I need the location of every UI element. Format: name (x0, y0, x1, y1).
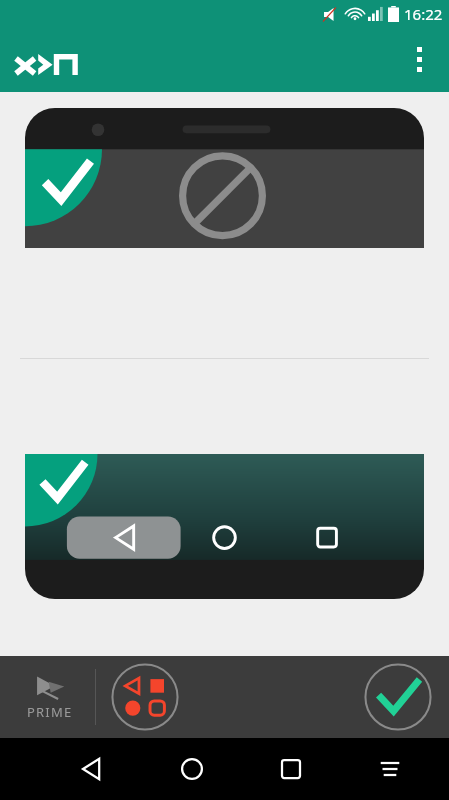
button[interactable]: Apply (361, 660, 435, 734)
staticText: 16:22 (404, 4, 443, 24)
button[interactable]: Recents (241, 738, 340, 800)
button[interactable]: Home (142, 738, 241, 800)
button[interactable]: Shapes (108, 660, 182, 734)
button[interactable]: PRIME (14, 674, 86, 721)
button[interactable]: Back (42, 738, 142, 800)
button[interactable] (25, 454, 424, 599)
button[interactable] (25, 108, 424, 248)
staticText: PRIME (27, 703, 73, 721)
button[interactable]: Menu (340, 738, 439, 800)
button[interactable]: More options (397, 38, 441, 82)
